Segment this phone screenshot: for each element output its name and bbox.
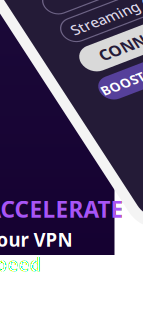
staticText: Your VPN Speed — [0, 227, 72, 277]
staticText: Streaming Off — [0, 71, 65, 91]
staticText: Fastest — [0, 38, 41, 58]
staticText: ACCELERATE — [0, 194, 123, 224]
